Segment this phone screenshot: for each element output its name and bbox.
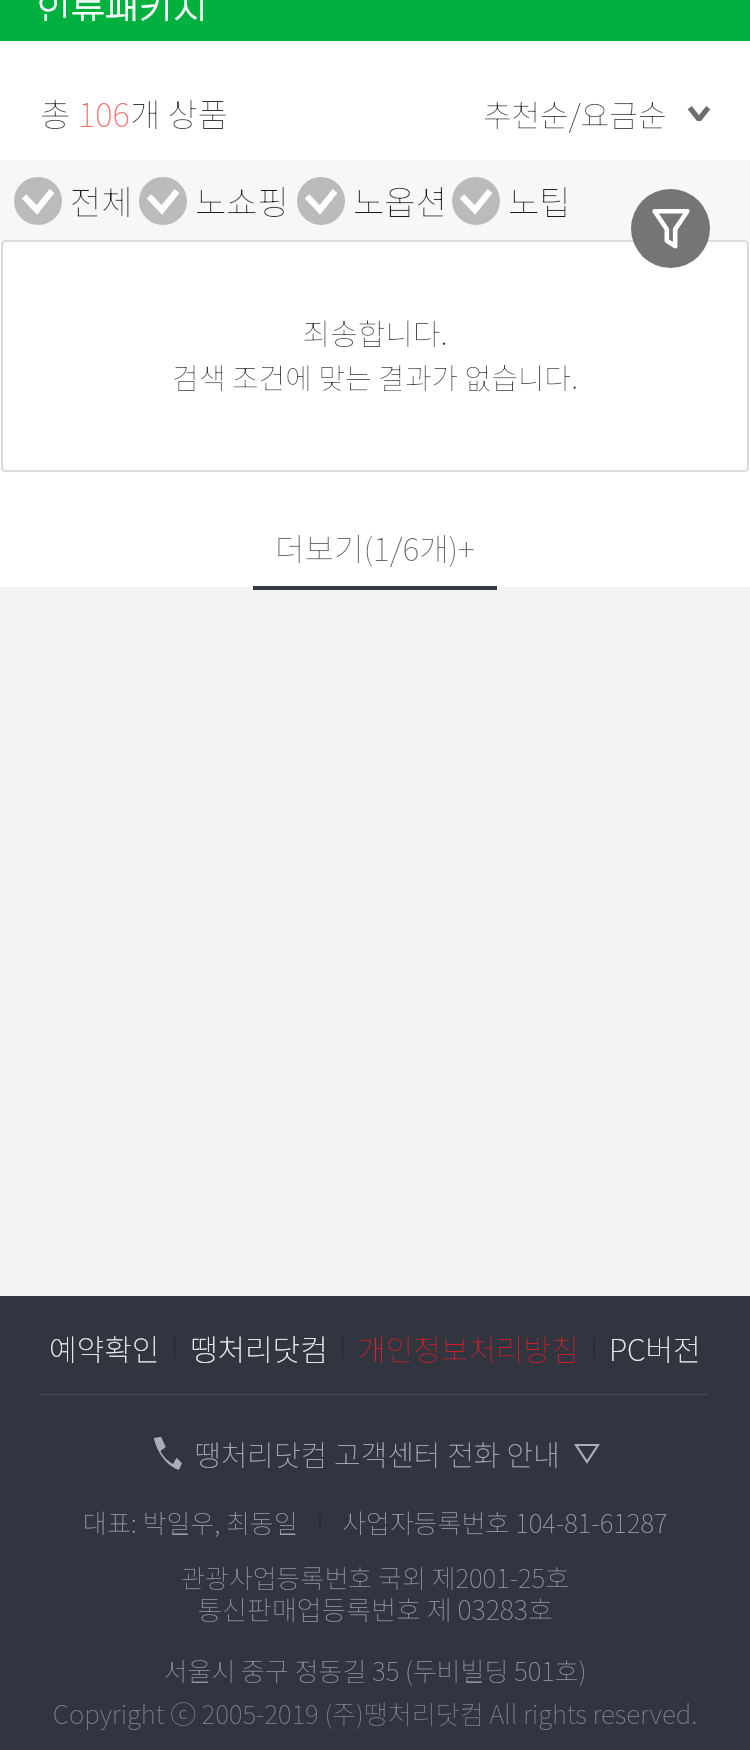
button[interactable]: 추천순/요금순 xyxy=(483,91,711,136)
button[interactable]: PC버전 xyxy=(603,1320,707,1375)
staticText: 추천순/요금순 xyxy=(483,91,667,136)
staticText: 서울시 중구 정동길 35 (두비빌딩 501호) xyxy=(0,1651,750,1689)
staticText: 노옵션 xyxy=(353,176,447,225)
button[interactable]: 필터 xyxy=(631,189,710,268)
staticText: PC버전 xyxy=(609,1326,701,1369)
button[interactable]: 예약확인 xyxy=(43,1320,166,1375)
button[interactable]: 땡처리닷컴 xyxy=(184,1320,334,1375)
staticText: 검색 조건에 맞는 결과가 없습니다. xyxy=(1,355,749,397)
staticText: Copyright ⓒ 2005-2019 (주)땡처리닷컴 All right… xyxy=(0,1694,750,1732)
staticText: 총 xyxy=(40,89,78,137)
staticText: 죄송합니다. xyxy=(1,310,749,353)
button[interactable]: 노쇼핑 xyxy=(139,176,289,225)
staticText: 전체 xyxy=(70,176,133,225)
staticText: 인류패키지 xyxy=(37,0,208,21)
staticText: 예약확인 xyxy=(49,1326,160,1369)
staticText: 관광사업등록번호 국외 제2001-25호 xyxy=(0,1558,750,1596)
button[interactable]: 노팁 xyxy=(452,176,571,225)
button[interactable]: 땡처리닷컴 고객센터 전화 안내 xyxy=(0,1432,750,1474)
staticText: 더보기(1/6개)+ xyxy=(0,524,750,570)
button[interactable]: 더보기(1/6개)+ xyxy=(0,472,750,587)
button[interactable]: 인류패키지 xyxy=(0,0,750,41)
staticText: 노쇼핑 xyxy=(195,176,289,225)
staticText: 대표: 박일우, 최동일 xyxy=(83,1503,298,1541)
button[interactable]: 노옵션 xyxy=(297,176,447,225)
staticText: 사업자등록번호 104-81-61287 xyxy=(342,1503,668,1541)
button[interactable]: 개인정보처리방침 xyxy=(352,1320,585,1375)
staticText: 노팁 xyxy=(508,176,571,225)
button[interactable]: 전체 xyxy=(14,176,133,225)
staticText: 개 상품 xyxy=(130,89,229,137)
staticText: 개인정보처리방침 xyxy=(358,1326,579,1369)
staticText: 땡처리닷컴 고객센터 전화 안내 xyxy=(194,1432,560,1474)
staticText: 106 xyxy=(78,89,130,137)
staticText: 땡처리닷컴 xyxy=(190,1326,328,1369)
button[interactable]: 총 xyxy=(40,89,229,137)
staticText: 통신판매업등록번호 제 03283호 xyxy=(0,1589,750,1628)
